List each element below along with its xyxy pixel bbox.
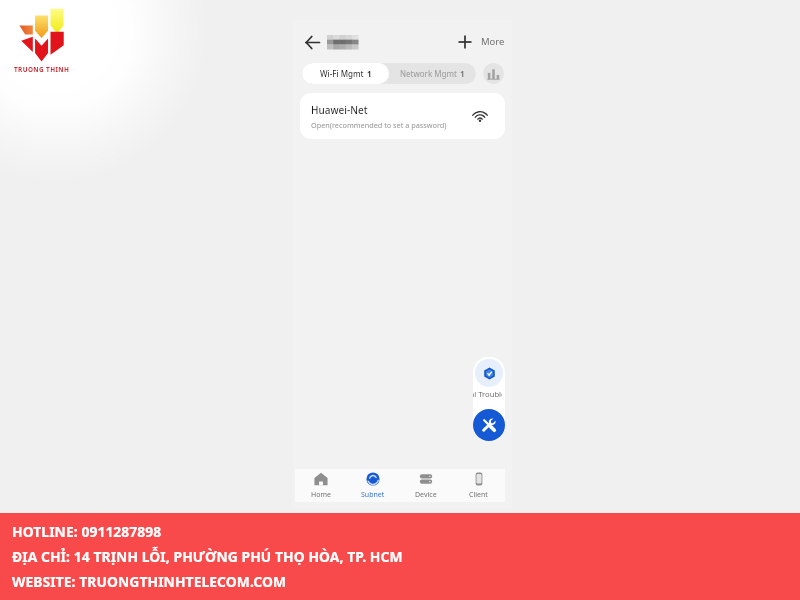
button[interactable]: Statistics [483,63,504,84]
staticText: Huawei-Net [311,103,368,117]
button[interactable]: Device [399,472,452,500]
button[interactable]: Back [302,32,322,52]
staticText: Network Mgmt [400,68,457,79]
button[interactable]: Huawei-Net [300,93,505,139]
staticText: ĐỊA CHỈ: 14 TRỊNH LỖI, PHƯỜNG PHÚ THỌ HÒ… [12,547,403,566]
button[interactable]: Network Mgmt [389,63,476,84]
staticText: Device [415,490,437,500]
button[interactable]: Wi-Fi Mgmt [302,63,389,84]
button[interactable]: Client [452,472,505,500]
staticText: 1 [460,68,465,79]
staticText: Home [311,490,331,500]
staticText: More [481,35,505,48]
staticText: Client [469,490,488,500]
staticText: TRUONG THINH [14,65,94,74]
staticText: Open(recommended to set a password) [311,120,447,130]
button[interactable]: Home [295,472,347,500]
staticText: WEBSITE: TRUONGTHINHTELECOM.COM [12,572,286,591]
button[interactable]: Subnet [347,472,399,500]
button[interactable]: Tools [473,409,505,441]
staticText: Wi-Fi Mgmt [320,68,364,79]
button[interactable]: More [481,35,505,48]
staticText: 1 [367,68,372,79]
staticText: Subnet [361,490,385,500]
button[interactable]: Add [450,31,472,53]
button[interactable]: al Troubles [473,357,505,437]
staticText: HOTLINE: 0911287898 [12,522,162,541]
staticText: al Troubles [473,389,502,399]
